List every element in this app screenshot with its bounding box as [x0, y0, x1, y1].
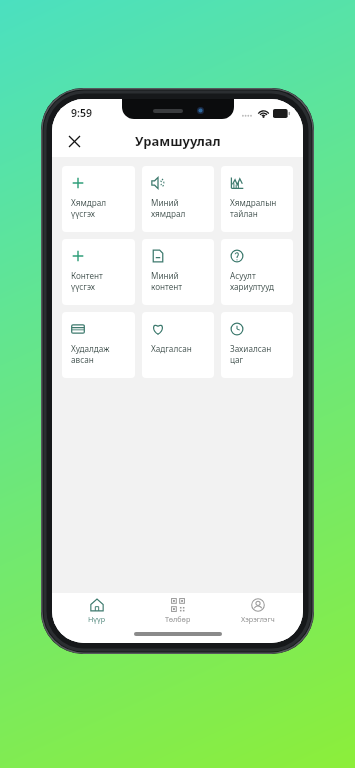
button[interactable]: Миний контент — [142, 239, 214, 305]
button[interactable]: Хэрэглэгч — [223, 595, 293, 627]
button[interactable]: Нүүр — [62, 595, 132, 627]
button[interactable]: Төлбөр — [143, 595, 213, 627]
staticText: 9:59 — [71, 106, 92, 120]
button[interactable]: Хямдрал үүсгэх — [62, 166, 135, 232]
button[interactable]: Худалдаж авсан — [62, 312, 135, 378]
button[interactable]: Хадгалсан — [142, 312, 214, 378]
staticText: Миний хямдрал — [151, 197, 186, 219]
button[interactable]: Захиалсан цаг — [221, 312, 293, 378]
staticText: Нүүр — [88, 614, 106, 624]
button[interactable]: Хямдралын тайлан — [221, 166, 293, 232]
staticText: Хадгалсан — [151, 343, 192, 354]
staticText: Хэрэглэгч — [241, 614, 275, 624]
staticText: Төлбөр — [165, 614, 191, 624]
staticText: Хямдралын тайлан — [230, 197, 277, 219]
button[interactable]: Close — [60, 127, 88, 155]
staticText: Захиалсан цаг — [230, 343, 272, 365]
staticText: Контент үүсгэх — [71, 270, 103, 292]
staticText: Асуулт хариултууд — [230, 270, 274, 292]
staticText: Худалдаж авсан — [71, 343, 110, 365]
button[interactable]: Асуулт хариултууд — [221, 239, 293, 305]
staticText: Урамшуулал — [135, 132, 221, 150]
button[interactable]: Контент үүсгэх — [62, 239, 135, 305]
button[interactable]: Миний хямдрал — [142, 166, 214, 232]
staticText: Хямдрал үүсгэх — [71, 197, 107, 219]
staticText: Миний контент — [151, 270, 183, 292]
